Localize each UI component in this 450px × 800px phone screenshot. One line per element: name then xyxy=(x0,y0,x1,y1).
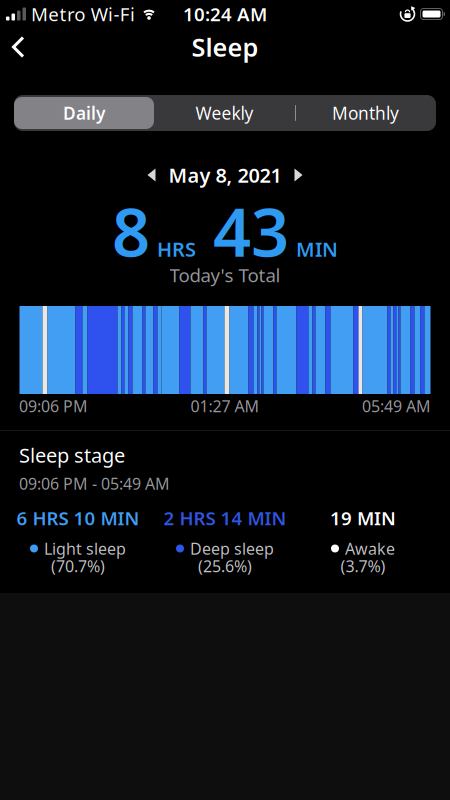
staticText: Awake xyxy=(345,538,395,559)
staticText: Metro Wi-Fi xyxy=(31,2,135,26)
staticText: MIN xyxy=(296,236,338,262)
staticText: 09:06 PM - 05:49 AM xyxy=(19,473,170,494)
button[interactable]: Weekly xyxy=(154,97,295,129)
staticText: (25.6%) xyxy=(198,555,252,577)
button[interactable] xyxy=(0,28,25,65)
staticText: Light sleep xyxy=(44,538,126,559)
staticText: 10:24 AM xyxy=(183,2,267,26)
staticText: (3.7%) xyxy=(340,555,385,577)
staticText: Weekly xyxy=(195,101,253,124)
staticText: Sleep stage xyxy=(19,442,125,468)
staticText: 43 xyxy=(213,187,289,275)
button[interactable]: Monthly xyxy=(295,97,436,129)
staticText: 19 MIN xyxy=(330,506,396,530)
staticText: Deep sleep xyxy=(190,538,274,559)
staticText: 2 HRS 14 MIN xyxy=(163,506,286,530)
staticText: Sleep xyxy=(191,30,258,64)
staticText: Monthly xyxy=(332,101,399,124)
staticText: Today's Total xyxy=(169,263,280,287)
staticText: 05:49 AM xyxy=(362,395,431,417)
staticText: 6 HRS 10 MIN xyxy=(16,506,139,530)
button[interactable] xyxy=(143,164,159,185)
staticText: 8 xyxy=(112,187,150,275)
staticText: (70.7%) xyxy=(51,555,105,577)
staticText: Daily xyxy=(63,101,105,124)
button[interactable]: Daily xyxy=(14,97,154,129)
staticText: HRS xyxy=(157,236,196,262)
staticText: 09:06 PM xyxy=(19,395,88,417)
staticText: 01:27 AM xyxy=(190,395,259,417)
button[interactable] xyxy=(290,164,306,185)
staticText: May 8, 2021 xyxy=(168,162,281,188)
